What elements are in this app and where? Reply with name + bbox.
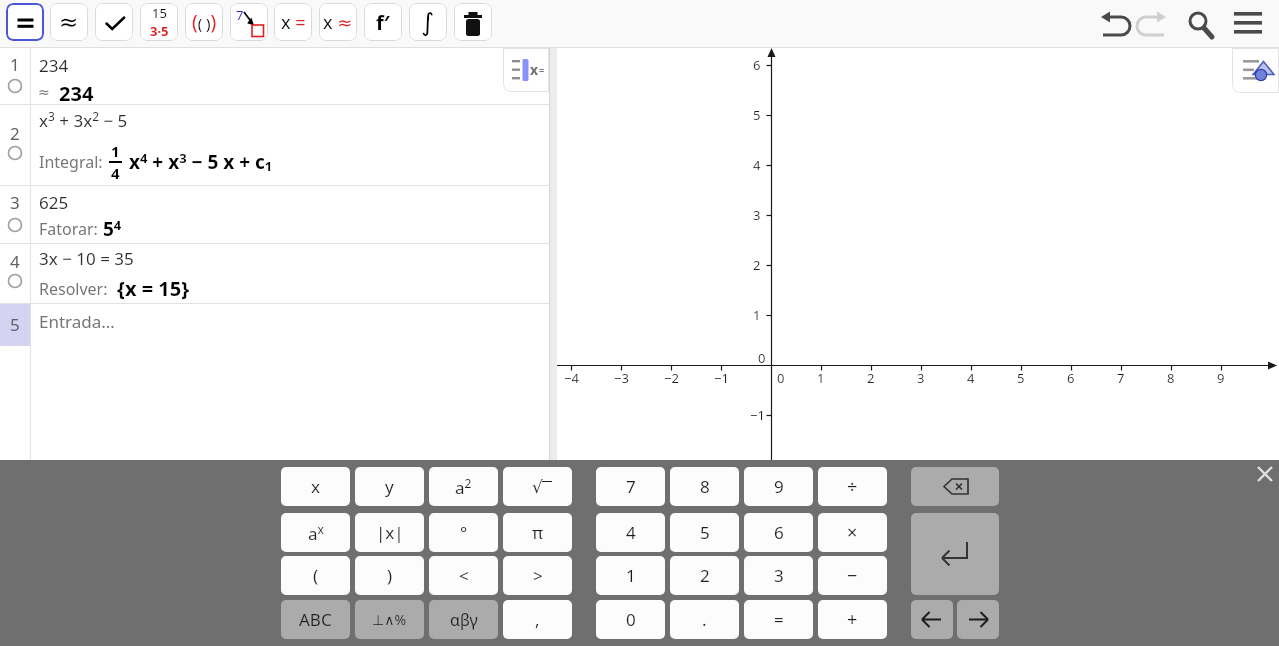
staticText: =	[539, 64, 545, 76]
staticText: 1	[10, 53, 20, 76]
button[interactable]: x	[503, 48, 549, 92]
button[interactable]: )	[355, 556, 424, 595]
button[interactable]	[1251, 460, 1279, 488]
button[interactable]: 6	[744, 513, 813, 552]
staticText: 1	[753, 306, 761, 324]
staticText: 6	[774, 521, 784, 544]
button[interactable]	[957, 600, 999, 639]
staticText: 625	[39, 191, 69, 214]
staticText: −2	[664, 369, 679, 387]
staticText: ax	[308, 521, 324, 545]
button[interactable]: ×	[818, 513, 887, 552]
staticText: Fatorar:	[39, 218, 103, 240]
staticText: y	[385, 475, 394, 498]
button[interactable]: |x|	[355, 513, 424, 552]
staticText: )	[387, 564, 393, 587]
button[interactable]	[911, 513, 999, 595]
staticText: 1	[626, 564, 636, 587]
staticText: x3 + 3x2 − 5	[39, 108, 128, 132]
staticText: 54	[103, 216, 122, 242]
staticText: (( ))	[192, 9, 217, 35]
button[interactable]: y	[355, 467, 424, 506]
button[interactable]	[6, 3, 44, 41]
staticText: 5	[1017, 369, 1025, 387]
staticText: 5	[753, 106, 761, 124]
button[interactable]	[911, 600, 953, 639]
staticText: Resolver:	[39, 278, 112, 300]
button[interactable]: (	[281, 556, 350, 595]
button[interactable]: 1	[596, 556, 665, 595]
button[interactable]: (( ))	[185, 3, 223, 41]
staticText: (	[313, 564, 319, 587]
button[interactable]: 8	[670, 467, 739, 506]
button[interactable]: ax	[281, 513, 350, 552]
staticText: 3	[753, 206, 761, 224]
button[interactable]: ≈	[50, 3, 88, 41]
staticText: Entrada…	[39, 310, 115, 333]
button[interactable]: 2	[670, 556, 739, 595]
button[interactable]: 7	[230, 3, 268, 41]
button[interactable]: 0	[596, 600, 665, 639]
button[interactable]	[1183, 5, 1221, 43]
staticText: 1	[817, 369, 825, 387]
staticText: −1	[750, 406, 765, 424]
button[interactable]: 15	[140, 3, 178, 41]
staticText: |x|	[376, 521, 404, 544]
button[interactable]: °	[429, 513, 498, 552]
button[interactable]: ,	[503, 600, 572, 639]
button[interactable]: ÷	[818, 467, 887, 506]
staticText: 4	[626, 521, 636, 544]
staticText: .	[702, 608, 707, 631]
button[interactable]	[1230, 5, 1268, 43]
staticText: ,	[535, 608, 540, 631]
staticText: √	[532, 477, 543, 497]
staticText: −1	[714, 369, 729, 387]
staticText: 6	[1067, 369, 1075, 387]
button[interactable]: <	[429, 556, 498, 595]
staticText: ÷	[847, 474, 858, 499]
button[interactable]: x =	[274, 3, 312, 41]
button[interactable]: 7	[596, 467, 665, 506]
staticText: 7	[236, 6, 244, 24]
button[interactable]: √	[503, 467, 572, 506]
button[interactable]: ∫	[409, 3, 447, 41]
button[interactable]: π	[503, 513, 572, 552]
button[interactable]	[95, 3, 133, 41]
button[interactable]: .	[670, 600, 739, 639]
button[interactable]	[1232, 48, 1279, 93]
staticText: ×	[847, 520, 858, 545]
button[interactable]: −	[818, 556, 887, 595]
button[interactable]: ⊥∧%	[355, 600, 424, 639]
staticText: °	[460, 521, 468, 544]
staticText: 234	[39, 54, 69, 77]
staticText: −3	[614, 369, 629, 387]
staticText: 2	[867, 369, 875, 387]
button[interactable]: 9	[744, 467, 813, 506]
button[interactable]: 5	[670, 513, 739, 552]
staticText: 9	[1217, 369, 1225, 387]
button[interactable]: +	[818, 600, 887, 639]
staticText: ≈	[38, 84, 50, 100]
button[interactable]: 4	[596, 513, 665, 552]
button[interactable]: a2	[429, 467, 498, 506]
staticText: 3·5	[150, 22, 169, 40]
button[interactable]: ABC	[281, 600, 350, 639]
staticText: {x = 15}	[117, 275, 190, 302]
button[interactable]	[454, 3, 492, 41]
staticText: 4	[10, 250, 20, 273]
button[interactable]: x ≈	[319, 3, 357, 41]
staticText: 15	[152, 4, 167, 22]
button[interactable]: 3	[744, 556, 813, 595]
button[interactable]: f′	[364, 3, 402, 41]
button[interactable]: x	[281, 467, 350, 506]
staticText: x =	[281, 10, 306, 35]
button[interactable]: αβγ	[429, 600, 498, 639]
button[interactable]: >	[503, 556, 572, 595]
staticText: x4 + x3 − 5 x + c1	[129, 149, 273, 175]
button[interactable]: =	[744, 600, 813, 639]
staticText: 234	[59, 80, 94, 107]
staticText: 4	[753, 156, 761, 174]
button[interactable]	[911, 467, 999, 506]
staticText: 2	[753, 256, 761, 274]
staticText: ⊥∧%	[372, 610, 407, 629]
